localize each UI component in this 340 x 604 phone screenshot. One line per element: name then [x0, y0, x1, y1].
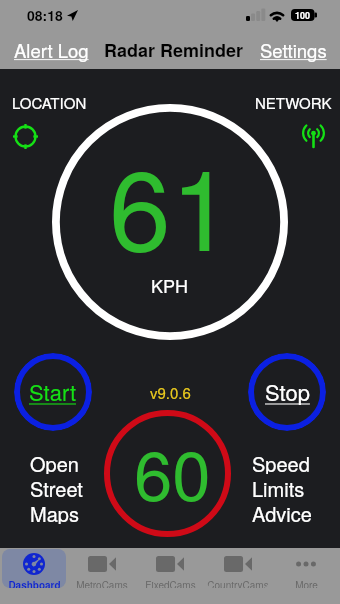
staticText: Radar Reminder: [104, 37, 244, 63]
staticText: KPH: [151, 272, 189, 298]
button[interactable]: Alert Log: [10, 31, 93, 69]
other: Network status: [303, 126, 324, 147]
staticText: Street: [30, 474, 83, 499]
staticText: Alert Log: [14, 37, 89, 63]
staticText: Open: [30, 449, 79, 474]
staticText: NETWORK: [255, 92, 332, 113]
staticText: MetroCams: [76, 578, 128, 588]
staticText: 61: [109, 124, 233, 283]
staticText: 100: [295, 9, 311, 21]
staticText: 60: [134, 422, 211, 521]
staticText: Settings: [260, 37, 327, 63]
staticText: Start: [29, 376, 77, 408]
staticText: Dashboard: [8, 578, 61, 588]
staticText: v9.0.6: [150, 382, 191, 403]
button[interactable]: CountryCams: [206, 549, 270, 588]
staticText: Speed: [252, 449, 310, 474]
staticText: LOCATION: [12, 92, 87, 113]
other: Location status: [13, 124, 38, 149]
staticText: FixedCams: [145, 578, 196, 588]
button[interactable]: MetroCams: [70, 549, 134, 588]
button[interactable]: FixedCams: [138, 549, 202, 588]
button[interactable]: Stop: [248, 353, 326, 431]
staticText: CountryCams: [207, 578, 269, 588]
button[interactable]: Settings: [256, 31, 331, 69]
staticText: More: [295, 578, 318, 588]
button[interactable]: Start: [14, 353, 92, 431]
staticText: Advice: [252, 499, 312, 524]
staticText: Maps: [30, 499, 79, 524]
staticText: Limits: [252, 474, 305, 499]
staticText: Stop: [265, 376, 310, 408]
button[interactable]: Dashboard: [2, 549, 66, 588]
button[interactable]: More: [274, 549, 338, 588]
staticText: 08:18: [27, 5, 63, 25]
